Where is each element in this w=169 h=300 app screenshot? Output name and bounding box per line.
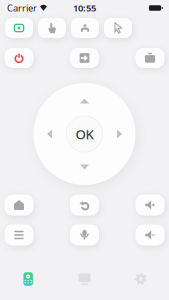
button[interactable]: Volume up xyxy=(135,194,164,215)
button[interactable]: Pointer xyxy=(104,18,132,38)
button[interactable]: Settings xyxy=(113,258,169,300)
button[interactable]: Down xyxy=(80,131,89,136)
button[interactable]: Cast to TV xyxy=(5,18,33,38)
button[interactable]: Up xyxy=(80,131,89,136)
staticText: 10:55 xyxy=(73,2,96,14)
staticText: Carrier xyxy=(7,2,37,14)
button[interactable]: Left xyxy=(82,129,87,138)
button[interactable]: Voice search xyxy=(70,224,99,245)
button[interactable]: Volume down xyxy=(135,224,164,245)
button[interactable]: Input source xyxy=(70,48,99,68)
button[interactable]: Devices xyxy=(56,258,113,300)
button[interactable]: Keyboard xyxy=(71,18,99,38)
staticText: OK xyxy=(75,125,93,143)
button[interactable]: OK xyxy=(66,115,103,152)
button[interactable]: Right xyxy=(82,129,87,138)
button[interactable]: Remote xyxy=(0,258,56,300)
button[interactable]: Back xyxy=(70,194,99,215)
button[interactable]: Power xyxy=(4,48,33,68)
button[interactable]: Home xyxy=(4,194,33,215)
button[interactable]: Touchpad xyxy=(38,18,66,38)
button[interactable]: Menu xyxy=(4,224,33,245)
button[interactable]: Screen mirroring xyxy=(135,48,164,68)
